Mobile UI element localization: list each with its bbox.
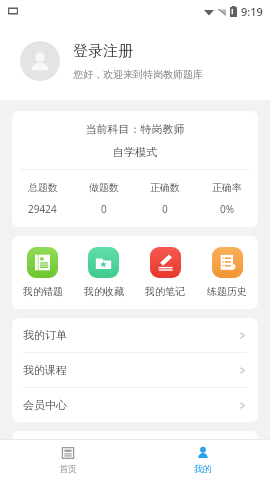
staticText: 0% bbox=[220, 202, 235, 216]
staticText: 0 bbox=[162, 202, 168, 216]
staticText: 登录注册 bbox=[73, 42, 133, 61]
button[interactable]: 我的笔记 bbox=[134, 247, 196, 298]
staticText: 当前科目：特岗教师 bbox=[12, 122, 258, 136]
button[interactable]: 练题历史 bbox=[196, 247, 258, 298]
staticText: 9:19 bbox=[241, 4, 263, 19]
button[interactable]: 我的课程 bbox=[12, 353, 258, 387]
button[interactable]: 我的收藏 bbox=[73, 247, 134, 298]
staticText: 正确率 bbox=[212, 181, 242, 194]
button[interactable]: 会员中心 bbox=[12, 388, 258, 422]
staticText: 我的笔记 bbox=[145, 285, 185, 298]
button[interactable]: 隐私政策 bbox=[12, 466, 258, 480]
staticText: 您好，欢迎来到特岗教师题库 bbox=[73, 68, 203, 81]
staticText: 隐私政策 bbox=[23, 466, 238, 480]
staticText: 我的课程 bbox=[23, 363, 238, 377]
button[interactable]: 登录注册 bbox=[0, 22, 270, 100]
staticText: 用户协议 bbox=[23, 441, 238, 455]
staticText: 0 bbox=[101, 202, 107, 216]
staticText: 29424 bbox=[28, 202, 57, 216]
button[interactable]: 我的订单 bbox=[12, 318, 258, 352]
button[interactable]: 首页 bbox=[0, 440, 135, 480]
staticText: 我的 bbox=[194, 463, 212, 474]
staticText: 首页 bbox=[59, 463, 77, 474]
staticText: 会员中心 bbox=[23, 398, 238, 412]
staticText: 我的错题 bbox=[23, 285, 63, 298]
button[interactable]: 用户协议 bbox=[12, 431, 258, 465]
staticText: 我的订单 bbox=[23, 328, 238, 342]
staticText: 正确数 bbox=[150, 181, 180, 194]
staticText: 我的收藏 bbox=[84, 285, 124, 298]
staticText: 做题数 bbox=[89, 181, 119, 194]
staticText: 自学模式 bbox=[12, 145, 258, 159]
staticText: 总题数 bbox=[28, 181, 58, 194]
button[interactable]: 我的错题 bbox=[12, 247, 73, 298]
staticText: 练题历史 bbox=[207, 285, 247, 298]
button[interactable]: 我的 bbox=[135, 440, 270, 480]
